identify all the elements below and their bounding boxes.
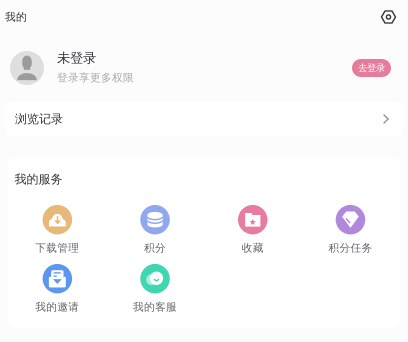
- button[interactable]: 设置: [381, 10, 396, 24]
- button[interactable]: 我的客服: [106, 266, 204, 312]
- staticText: 我的客服: [133, 300, 177, 313]
- staticText: 我的服务: [14, 172, 62, 187]
- staticText: 积分任务: [328, 241, 372, 254]
- button[interactable]: 我的邀请: [8, 266, 106, 312]
- staticText: 积分: [144, 241, 166, 254]
- staticText: 我的: [5, 10, 27, 23]
- staticText: 下载管理: [35, 241, 79, 254]
- staticText: 未登录: [57, 50, 96, 66]
- button[interactable]: 浏览记录: [5, 102, 403, 136]
- button[interactable]: 积分: [106, 207, 204, 253]
- button[interactable]: 去登录: [352, 59, 391, 77]
- button[interactable]: 积分任务: [302, 207, 399, 253]
- staticText: 去登录: [358, 62, 385, 74]
- staticText: 收藏: [242, 241, 264, 254]
- button[interactable]: 下载管理: [8, 207, 106, 253]
- button[interactable]: 收藏: [204, 207, 302, 253]
- staticText: 浏览记录: [15, 112, 63, 126]
- staticText: 我的邀请: [35, 300, 79, 313]
- staticText: 登录享更多权限: [57, 71, 134, 84]
